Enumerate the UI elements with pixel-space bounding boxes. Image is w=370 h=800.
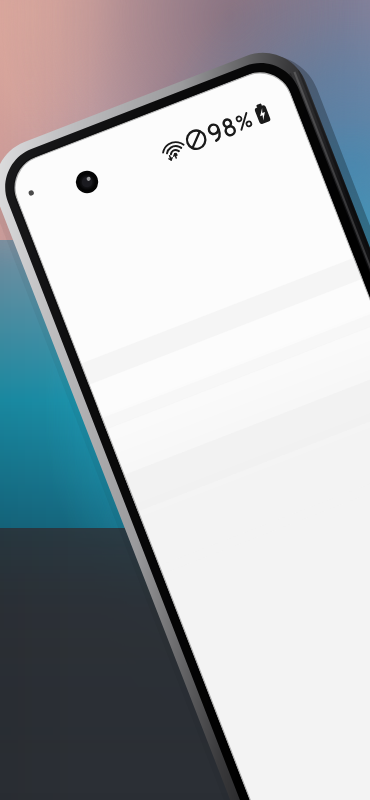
button[interactable]: Phone product photo (0, 0, 370, 800)
